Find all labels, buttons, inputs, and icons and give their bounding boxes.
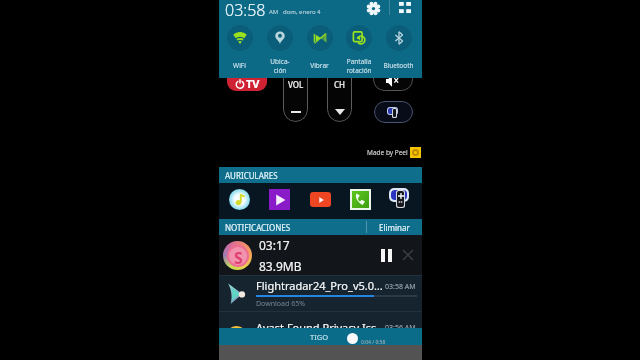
staticText: Avast Found Privacy Issu… bbox=[256, 320, 385, 335]
button[interactable]: Pause bbox=[375, 235, 397, 275]
button[interactable]: Music bbox=[229, 189, 250, 210]
button[interactable]: Dismiss bbox=[397, 235, 419, 275]
button[interactable]: Avast Found Privacy Issu… bbox=[219, 312, 422, 342]
button[interactable]: Ubica- ción bbox=[260, 22, 299, 76]
button[interactable]: Edit quick settings bbox=[394, 0, 416, 18]
staticText: Pantalla rotación bbox=[346, 57, 372, 73]
button[interactable]: Bluetooth bbox=[379, 22, 418, 76]
button[interactable]: Phone bbox=[352, 191, 369, 208]
staticText: 0:04 / 0:58 bbox=[361, 339, 386, 346]
button[interactable]: TV bbox=[227, 66, 267, 91]
button[interactable]: Remote bbox=[388, 187, 411, 215]
staticText: Bluetooth bbox=[383, 61, 414, 70]
staticText: S bbox=[234, 247, 243, 265]
staticText: VOL bbox=[288, 79, 304, 90]
button[interactable]: WiFi bbox=[220, 22, 259, 76]
staticText: 03:17 bbox=[259, 237, 290, 253]
button[interactable]: Flightradar24_Pro_v5.0.3… bbox=[219, 276, 422, 311]
staticText: AM bbox=[269, 8, 279, 16]
staticText: Flightradar24_Pro_v5.0.3… bbox=[256, 278, 385, 293]
staticText: Made by Peel bbox=[367, 148, 408, 157]
staticText: 03:56 AM bbox=[385, 323, 416, 333]
staticText: 83.9MB bbox=[259, 258, 302, 274]
button[interactable]: Settings bbox=[363, 0, 383, 18]
staticText: CH bbox=[334, 79, 346, 90]
button[interactable]: Eliminar bbox=[366, 219, 422, 235]
staticText: Eliminar bbox=[379, 222, 410, 233]
staticText: AURICULARES bbox=[225, 170, 278, 181]
staticText: 03:58 AM bbox=[385, 282, 416, 292]
button[interactable]: Pantalla rotación bbox=[339, 22, 378, 76]
staticText: Download 65% bbox=[256, 299, 305, 309]
staticText: 03:58 bbox=[225, 0, 266, 20]
button[interactable]: S bbox=[219, 235, 422, 275]
button[interactable]: VOL bbox=[283, 56, 308, 122]
staticText: WiFi bbox=[233, 61, 246, 70]
staticText: dom, enero 4 bbox=[283, 8, 321, 16]
button[interactable]: Mute bbox=[373, 62, 413, 91]
staticText: TV bbox=[246, 76, 260, 91]
staticText: Vibrar bbox=[310, 61, 329, 70]
button[interactable]: Guide bbox=[374, 101, 413, 123]
staticText: Ubica- ción bbox=[270, 57, 290, 73]
staticText: NOTIFICACIONES bbox=[225, 222, 291, 233]
button[interactable]: Video player bbox=[269, 189, 290, 210]
button[interactable]: YouTube bbox=[310, 192, 331, 207]
button[interactable]: Vibrar bbox=[300, 22, 339, 76]
button[interactable]: CH bbox=[327, 56, 352, 122]
staticText: TIGO bbox=[310, 332, 329, 342]
